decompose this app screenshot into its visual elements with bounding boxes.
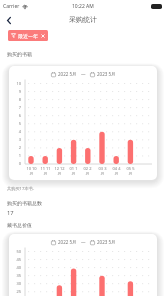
staticText: 04 4月 xyxy=(111,166,122,176)
staticText: 17 xyxy=(7,209,14,217)
button[interactable]: 2022 5月 xyxy=(50,238,78,246)
staticText: 最近一年 xyxy=(18,33,38,39)
staticText: 30 xyxy=(9,281,21,286)
staticText: 藏书总价值 xyxy=(7,222,32,228)
staticText: — xyxy=(81,71,86,77)
staticText: 3 xyxy=(9,137,21,142)
staticText: 25 xyxy=(9,289,21,294)
staticText: 50 xyxy=(9,249,21,254)
staticText: 12 12月 xyxy=(54,166,65,176)
staticText: 4 xyxy=(9,129,21,134)
staticText: 10:22 AM xyxy=(72,3,94,10)
staticText: 10 xyxy=(9,81,21,86)
staticText: 2022 5月 xyxy=(58,239,77,245)
staticText: 11 11月 xyxy=(40,166,51,176)
staticText: 共购买17本书。 xyxy=(7,186,37,192)
staticText: 7 xyxy=(9,105,21,110)
staticText: 2 xyxy=(9,145,21,150)
button[interactable]: Back xyxy=(0,13,18,27)
staticText: 9 xyxy=(9,89,21,94)
button[interactable]: 最近一年 xyxy=(8,30,48,41)
button[interactable]: 2023 5月 xyxy=(89,238,117,246)
staticText: 01 1月 xyxy=(68,166,79,176)
staticText: 35 xyxy=(9,273,21,278)
staticText: 45 xyxy=(9,257,21,262)
staticText: 购买的书籍总数 xyxy=(7,200,42,206)
staticText: Carrier xyxy=(3,3,20,10)
staticText: 03 3月 xyxy=(97,166,108,176)
staticText: 40 xyxy=(9,265,21,270)
staticText: 购买的书籍 xyxy=(7,51,32,57)
staticText: 采购统计 xyxy=(69,15,97,24)
staticText: 05 5月 xyxy=(125,166,136,176)
staticText: 10 10月 xyxy=(26,166,37,176)
button[interactable]: 2023 5月 xyxy=(89,70,117,78)
staticText: 6 xyxy=(9,113,21,118)
staticText: 0 xyxy=(9,161,21,166)
staticText: 02 2月 xyxy=(82,166,93,176)
staticText: 8 xyxy=(9,97,21,102)
staticText: 1 xyxy=(9,153,21,158)
staticText: — xyxy=(81,239,86,245)
staticText: 2023 5月 xyxy=(97,239,116,245)
staticText: 2022 5月 xyxy=(58,71,77,77)
button[interactable]: 2022 5月 xyxy=(50,70,78,78)
staticText: 5 xyxy=(9,121,21,126)
staticText: 2023 5月 xyxy=(97,71,116,77)
